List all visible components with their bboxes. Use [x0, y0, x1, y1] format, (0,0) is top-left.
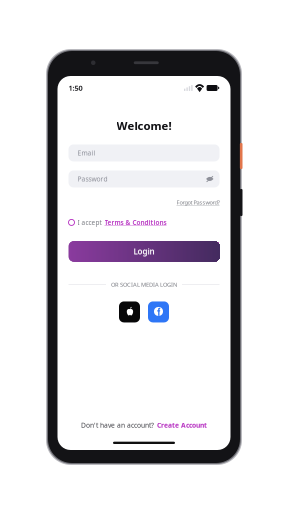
staticText: Password — [77, 174, 107, 183]
button[interactable]: Forgot Password? — [176, 199, 219, 206]
staticText: 1:50 — [68, 83, 82, 93]
staticText: Welcome! — [116, 118, 171, 133]
staticText: Forgot Password? — [176, 199, 219, 206]
button[interactable]: Terms & Conditions — [104, 218, 166, 227]
staticText: Terms & Conditions — [104, 218, 166, 227]
button[interactable]: Continue with Apple — [119, 301, 140, 322]
staticText: Don't have an account? — [81, 421, 154, 430]
button[interactable]: Create Account — [157, 421, 207, 430]
staticText: I accept — [77, 218, 101, 227]
staticText: Create Account — [157, 421, 207, 430]
button[interactable]: Accept terms and conditions — [68, 219, 74, 225]
staticText: Login — [133, 246, 154, 257]
button[interactable]: Login — [68, 241, 219, 261]
button[interactable]: Continue with Facebook — [148, 301, 169, 322]
staticText: Email — [77, 148, 95, 157]
staticText: OR SOCIAL MEDIA LOGIN — [111, 280, 177, 288]
